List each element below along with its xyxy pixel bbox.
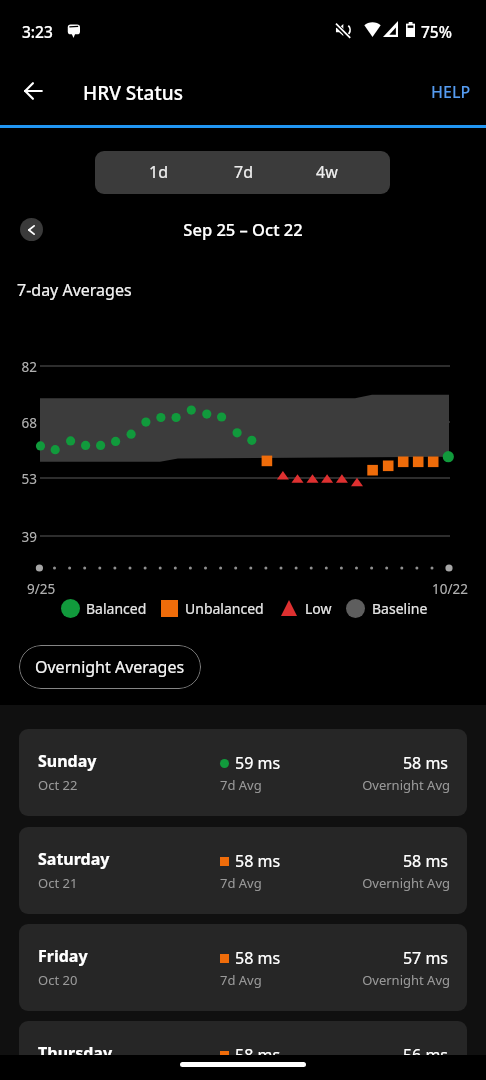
staticText: 10/22 bbox=[406, 580, 468, 598]
staticText: 7-day Averages bbox=[17, 279, 132, 301]
staticText: Oct 22 bbox=[38, 776, 78, 794]
staticText: Low bbox=[305, 599, 332, 618]
button[interactable] bbox=[292, 151, 390, 194]
button[interactable] bbox=[193, 151, 291, 194]
staticText: 58 ms bbox=[235, 947, 281, 969]
staticText: Sunday bbox=[38, 750, 97, 772]
staticText: HELP bbox=[431, 81, 471, 103]
staticText: Thursday bbox=[38, 1042, 113, 1064]
staticText: Oct 21 bbox=[38, 874, 78, 892]
staticText: 58 ms bbox=[235, 1044, 281, 1066]
staticText: 75% bbox=[421, 21, 452, 42]
staticText: 9/25 bbox=[27, 580, 56, 598]
button[interactable]: Previous period bbox=[20, 218, 43, 241]
button[interactable]: Overnight Averages bbox=[19, 645, 201, 689]
staticText: 3:23 bbox=[22, 21, 53, 42]
staticText: Friday bbox=[38, 945, 88, 967]
staticText: 1d bbox=[149, 161, 168, 183]
staticText: Overnight Avg bbox=[299, 971, 450, 989]
staticText: Unbalanced bbox=[185, 599, 264, 618]
button[interactable] bbox=[95, 151, 193, 194]
staticText: Baseline bbox=[372, 599, 428, 618]
staticText: 82 bbox=[13, 358, 37, 376]
staticText: Overnight Averages bbox=[35, 656, 185, 678]
button[interactable]: Friday bbox=[19, 924, 467, 1011]
staticText: 58 ms bbox=[299, 752, 448, 774]
staticText: 7d bbox=[234, 161, 253, 183]
staticText: 56 ms bbox=[299, 1044, 448, 1066]
staticText: Overnight Avg bbox=[299, 874, 450, 892]
staticText: 57 ms bbox=[299, 947, 448, 969]
staticText: Saturday bbox=[38, 848, 110, 870]
staticText: 58 ms bbox=[299, 850, 448, 872]
staticText: Balanced bbox=[86, 599, 147, 618]
button[interactable]: Sunday bbox=[19, 729, 467, 816]
button[interactable]: Saturday bbox=[19, 827, 467, 914]
staticText: Sep 25 – Oct 22 bbox=[0, 218, 486, 240]
staticText: 39 bbox=[13, 528, 37, 546]
staticText: 7d Avg bbox=[220, 971, 262, 989]
button[interactable]: Thursday bbox=[19, 1021, 467, 1080]
staticText: 7d Avg bbox=[220, 874, 262, 892]
button[interactable]: Back bbox=[12, 70, 54, 112]
staticText: Overnight Avg bbox=[299, 776, 450, 794]
staticText: HRV Status bbox=[83, 80, 183, 106]
staticText: 59 ms bbox=[235, 752, 281, 774]
staticText: 53 bbox=[13, 470, 37, 488]
staticText: 7d Avg bbox=[220, 776, 262, 794]
staticText: Oct 20 bbox=[38, 971, 78, 989]
staticText: 68 bbox=[13, 414, 37, 432]
button[interactable]: HELP bbox=[431, 81, 471, 103]
staticText: 58 ms bbox=[235, 850, 281, 872]
staticText: 4w bbox=[316, 161, 338, 183]
